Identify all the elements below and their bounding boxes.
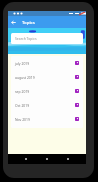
button[interactable]: Nov 2019 (11, 112, 83, 126)
button[interactable]: Search Topics (11, 33, 83, 44)
button[interactable]: july 2019 (11, 56, 83, 70)
staticText: july 2019 (15, 61, 30, 66)
staticText: august 2019 (15, 75, 35, 80)
button[interactable]: sep 2019 (11, 84, 83, 98)
staticText: Nov 2019 (15, 117, 30, 122)
button[interactable]: Back (8, 16, 19, 28)
button[interactable]: august 2019 (11, 70, 83, 84)
button[interactable]: Home (40, 154, 54, 164)
button[interactable]: Back (19, 154, 33, 164)
staticText: Topics (22, 19, 35, 25)
button[interactable]: Recents (61, 154, 75, 164)
staticText: sep 2019 (15, 89, 30, 94)
button[interactable]: Oct 2019 (11, 98, 83, 112)
staticText: Search Topics (15, 36, 37, 41)
staticText: Oct 2019 (15, 103, 30, 108)
